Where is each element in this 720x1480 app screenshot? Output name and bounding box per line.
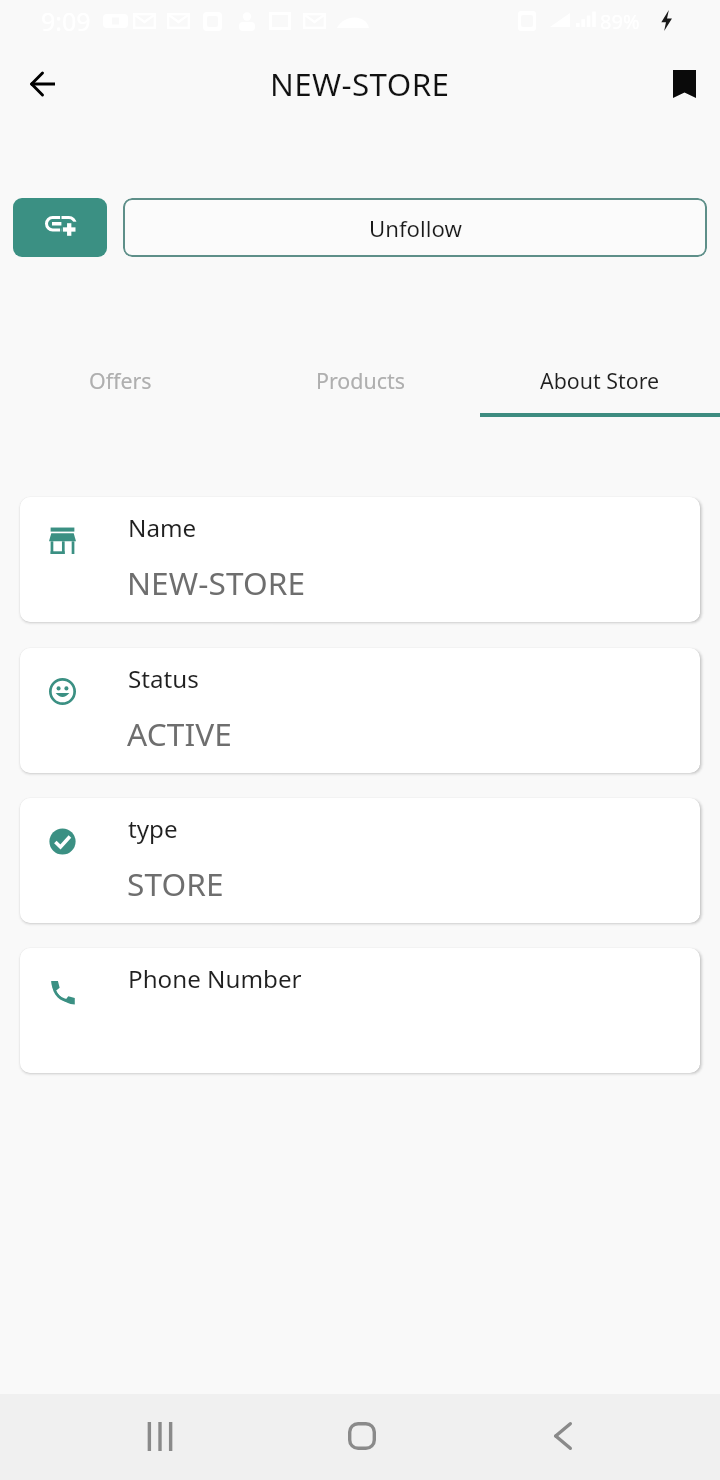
button[interactable]: Status: [20, 648, 700, 773]
staticText: type: [128, 812, 178, 845]
button[interactable]: Back: [531, 1404, 595, 1468]
button[interactable]: Home: [330, 1404, 394, 1468]
button[interactable]: Add link: [13, 198, 107, 257]
button[interactable]: Name: [20, 497, 700, 622]
button[interactable]: Unfollow: [123, 198, 707, 257]
staticText: Phone Number: [128, 962, 302, 995]
button[interactable]: Phone Number: [20, 948, 700, 1073]
staticText: Products: [316, 366, 405, 395]
staticText: Name: [128, 511, 197, 544]
staticText: Offers: [89, 366, 152, 395]
button[interactable]: type: [20, 798, 700, 923]
button[interactable]: Back: [14, 56, 70, 112]
staticText: Status: [128, 662, 199, 695]
button[interactable]: Bookmark: [656, 56, 712, 112]
button[interactable]: Products: [240, 366, 480, 417]
button[interactable]: Offers: [0, 366, 240, 417]
staticText: STORE: [127, 862, 224, 905]
staticText: NEW-STORE: [127, 561, 306, 604]
staticText: About Store: [540, 366, 660, 395]
button[interactable]: Recent apps: [128, 1404, 192, 1468]
staticText: ACTIVE: [127, 712, 232, 755]
staticText: NEW-STORE: [270, 62, 450, 105]
button[interactable]: About Store: [480, 366, 720, 417]
staticText: Unfollow: [369, 213, 462, 243]
